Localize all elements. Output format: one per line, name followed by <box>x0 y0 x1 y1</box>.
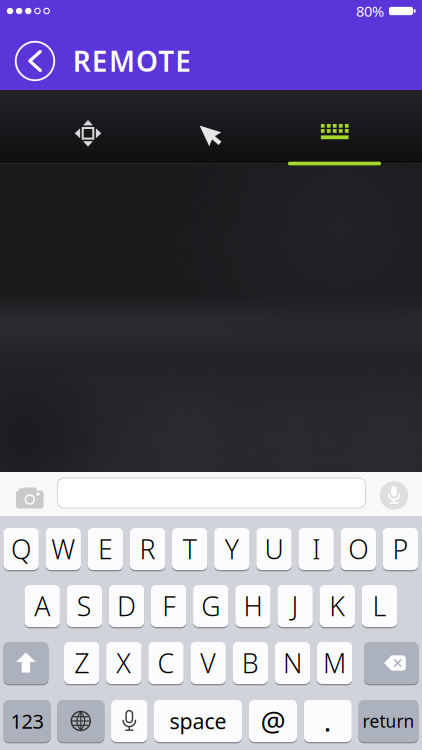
button[interactable]: E <box>88 527 123 571</box>
staticText: E <box>98 531 113 567</box>
staticText: S <box>77 588 92 624</box>
button[interactable]: space <box>154 699 242 743</box>
button[interactable] <box>16 42 54 80</box>
button[interactable]: Z <box>64 641 99 685</box>
button[interactable] <box>57 699 104 743</box>
staticText: G <box>201 588 220 624</box>
staticText: @ <box>260 702 285 740</box>
staticText: J <box>292 588 299 624</box>
button[interactable] <box>364 641 419 685</box>
button[interactable]: T <box>172 527 207 571</box>
button[interactable]: . <box>304 699 352 743</box>
button[interactable]: Q <box>3 527 39 571</box>
button[interactable]: K <box>320 584 355 628</box>
staticText: O <box>348 531 368 567</box>
staticText: X <box>116 645 131 681</box>
button[interactable]: U <box>256 527 292 571</box>
staticText: REMOTE <box>73 42 191 80</box>
staticText: H <box>243 588 262 624</box>
staticText: Q <box>11 531 31 567</box>
button[interactable]: S <box>67 584 102 628</box>
staticText: 80% <box>356 1 384 21</box>
button[interactable]: F <box>151 584 186 628</box>
button[interactable] <box>111 699 148 743</box>
staticText: I <box>312 531 320 567</box>
staticText: N <box>283 645 302 681</box>
staticText: R <box>139 531 155 567</box>
button[interactable]: return <box>359 699 418 743</box>
staticText: F <box>162 588 175 624</box>
button[interactable] <box>74 119 102 147</box>
button[interactable]: C <box>148 641 184 685</box>
staticText: V <box>200 645 216 681</box>
button[interactable]: @ <box>249 699 297 743</box>
staticText: Z <box>74 645 89 681</box>
button[interactable]: X <box>106 641 141 685</box>
button[interactable]: M <box>317 641 352 685</box>
staticText: W <box>51 531 75 567</box>
button[interactable] <box>15 484 45 508</box>
staticText: Y <box>225 531 239 567</box>
button[interactable]: 123 <box>4 699 51 743</box>
button[interactable]: W <box>45 527 81 571</box>
staticText: K <box>329 588 345 624</box>
button[interactable]: B <box>233 641 268 685</box>
staticText: A <box>34 588 50 624</box>
staticText: space <box>169 707 226 735</box>
staticText: T <box>183 531 197 567</box>
button[interactable] <box>3 641 48 685</box>
staticText: B <box>242 645 259 681</box>
button[interactable] <box>57 478 365 508</box>
button[interactable]: G <box>193 584 228 628</box>
staticText: . <box>324 702 332 740</box>
staticText: U <box>264 531 283 567</box>
staticText: L <box>372 588 386 624</box>
button[interactable]: H <box>235 584 271 628</box>
button[interactable]: A <box>24 584 60 628</box>
button[interactable]: I <box>298 527 334 571</box>
staticText: C <box>157 645 174 681</box>
button[interactable]: J <box>277 584 313 628</box>
button[interactable]: P <box>383 527 418 571</box>
staticText: M <box>323 645 346 681</box>
button[interactable] <box>198 118 228 148</box>
staticText: P <box>392 531 408 567</box>
button[interactable] <box>320 122 350 142</box>
button[interactable] <box>380 481 408 510</box>
button[interactable]: V <box>190 641 226 685</box>
button[interactable]: Y <box>214 527 250 571</box>
staticText: D <box>117 588 136 624</box>
button[interactable]: D <box>109 584 144 628</box>
button[interactable]: R <box>130 527 165 571</box>
button[interactable]: O <box>341 527 376 571</box>
button[interactable]: N <box>275 641 310 685</box>
button[interactable]: L <box>362 584 397 628</box>
staticText: 123 <box>11 708 44 734</box>
staticText: return <box>362 709 414 732</box>
